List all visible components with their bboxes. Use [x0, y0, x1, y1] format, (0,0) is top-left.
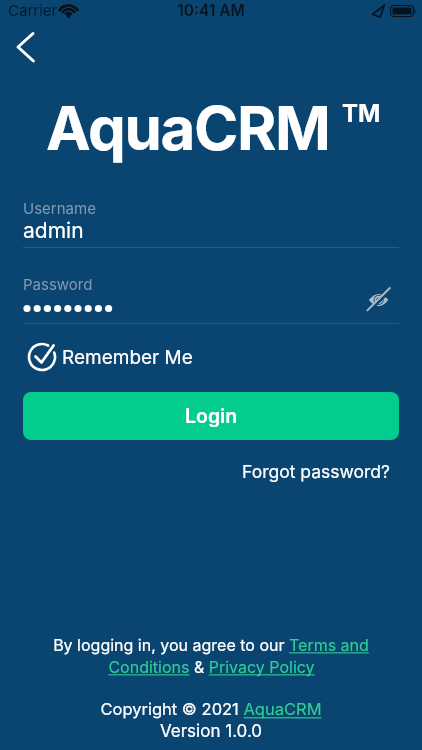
button[interactable]: By logging in, you agree to our Terms an… — [53, 635, 369, 654]
button[interactable] — [358, 280, 400, 318]
button[interactable]: Forgot password? — [242, 461, 390, 482]
button[interactable]: Login — [23, 392, 399, 440]
staticText: Password — [23, 275, 93, 293]
staticText: TM — [342, 99, 381, 128]
button[interactable]: Conditions & Privacy Policy — [108, 657, 315, 676]
button[interactable] — [6, 25, 46, 67]
staticText: Version 1.0.0 — [0, 721, 422, 742]
staticText: 10:41 AM — [0, 1, 422, 20]
button[interactable]: Remember Me — [23, 338, 233, 376]
staticText: Carrier — [8, 1, 58, 19]
staticText: AquaCRM — [46, 92, 330, 165]
staticText: Remember Me — [62, 346, 193, 369]
staticText: Username — [23, 199, 96, 217]
staticText: Login — [185, 404, 238, 428]
button[interactable]: Copyright © 2021 AquaCRM — [100, 699, 322, 719]
staticText: admin — [23, 218, 84, 243]
